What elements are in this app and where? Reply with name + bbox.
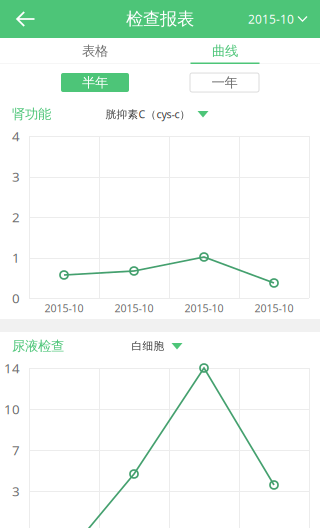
button[interactable]: 白细胞 xyxy=(131,339,182,352)
staticText: 2015-10 xyxy=(248,11,294,27)
staticText: 2015-10 xyxy=(184,301,223,315)
button[interactable]: 表格 xyxy=(60,38,129,64)
staticText: 2015-10 xyxy=(44,301,83,315)
staticText: 一年 xyxy=(211,74,237,91)
staticText: 3 xyxy=(12,168,20,185)
button[interactable]: 曲线 xyxy=(190,38,259,64)
staticText: 7 xyxy=(12,441,20,459)
button[interactable]: 2015-10 xyxy=(248,0,320,38)
staticText: 肾功能 xyxy=(12,106,51,122)
staticText: 3 xyxy=(12,482,20,500)
button[interactable]: 一年 xyxy=(190,73,259,92)
staticText: 表格 xyxy=(82,43,108,59)
staticText: 半年 xyxy=(82,74,108,91)
staticText: 2015-10 xyxy=(114,301,153,315)
staticText: 曲线 xyxy=(212,43,238,59)
button[interactable]: Back xyxy=(0,0,47,38)
staticText: 白细胞 xyxy=(131,339,164,352)
staticText: 尿液检查 xyxy=(12,338,64,354)
button[interactable]: 胱抑素C（cys-c） xyxy=(105,107,208,121)
staticText: 检查报表 xyxy=(126,8,194,30)
button[interactable]: 半年 xyxy=(61,73,129,92)
staticText: 4 xyxy=(12,127,20,145)
staticText: 胱抑素C（cys-c） xyxy=(105,107,190,121)
staticText: 1 xyxy=(12,249,20,266)
staticText: 2 xyxy=(12,208,20,226)
staticText: 2015-10 xyxy=(254,301,293,315)
staticText: 0 xyxy=(12,289,20,307)
staticText: 14 xyxy=(4,359,20,377)
staticText: 10 xyxy=(4,400,20,418)
